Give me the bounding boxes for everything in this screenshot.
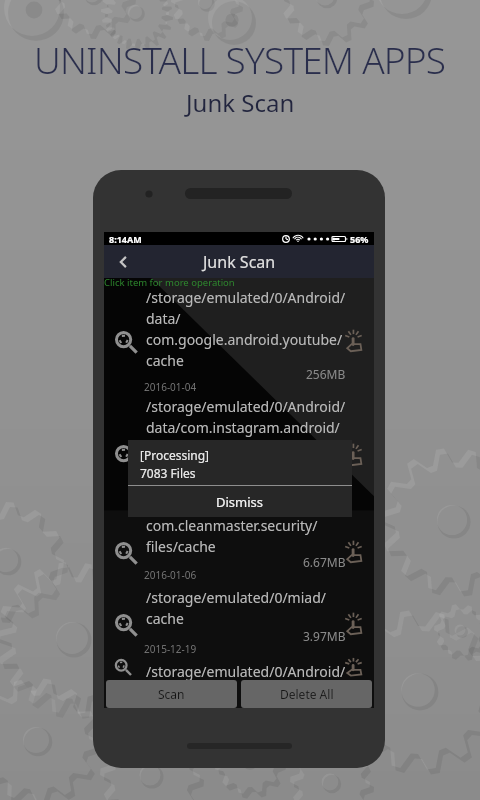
other: Tap action xyxy=(342,331,364,353)
staticText: 8:14AM xyxy=(109,233,142,245)
staticText: com.cleanmaster.security/ xyxy=(146,516,318,535)
staticText: 56% xyxy=(350,233,369,245)
other: Scan item xyxy=(114,658,138,676)
button[interactable]: Scan item xyxy=(104,289,374,395)
button[interactable]: Back xyxy=(104,245,144,278)
staticText: files/cache xyxy=(146,537,216,556)
staticText: Click item for more operation xyxy=(104,276,235,289)
other: Scan item xyxy=(114,541,138,565)
staticText: 3.97MB xyxy=(303,628,346,644)
button[interactable]: Delete All xyxy=(241,680,372,708)
other: Scan item xyxy=(114,613,138,637)
staticText: [Processing] xyxy=(140,447,210,463)
button[interactable]: Scan item xyxy=(104,589,374,661)
staticText: Junk Scan xyxy=(186,86,295,119)
button[interactable]: Dismiss xyxy=(128,486,352,517)
staticText: cache xyxy=(146,609,184,628)
other: Tap action xyxy=(342,445,364,467)
button[interactable]: Scan item xyxy=(104,661,374,679)
other: Tap action xyxy=(342,542,364,564)
staticText: 2016-01-06 xyxy=(144,568,197,582)
button[interactable]: Scan item xyxy=(104,517,374,589)
staticText: Junk Scan xyxy=(203,251,276,273)
staticText: cache xyxy=(146,439,184,458)
button[interactable]: Scan xyxy=(106,680,237,708)
button[interactable]: Scan item xyxy=(104,395,374,517)
staticText: data/com.instagram.android/ xyxy=(146,418,340,437)
staticText: /storage/emulated/0/miad/ xyxy=(146,588,326,607)
staticText: /storage/emulated/0/Android/ xyxy=(146,662,346,681)
staticText: 2015-12-19 xyxy=(144,642,197,656)
staticText: com.google.android.youtube/ xyxy=(146,330,343,349)
staticText: data/ xyxy=(146,309,181,328)
staticText: /storage/emulated/0/Android/ xyxy=(146,288,346,307)
staticText: cache xyxy=(146,351,184,370)
staticText: 7083 Files xyxy=(140,465,196,481)
button[interactable]: Back xyxy=(104,245,374,278)
other: Scan item xyxy=(114,444,138,468)
staticText: 256MB xyxy=(306,366,346,382)
staticText: Scan xyxy=(158,686,185,702)
staticText: /storage/emulated/0/Android/ xyxy=(146,397,346,416)
other: Scan item xyxy=(114,330,138,354)
staticText: 118MB xyxy=(306,474,346,490)
staticText: Delete All xyxy=(280,686,334,702)
other: Tap action xyxy=(342,614,364,636)
staticText: 6.67MB xyxy=(303,554,346,570)
staticText: UNINSTALL SYSTEM APPS xyxy=(34,34,446,84)
other: Tap action xyxy=(342,659,364,677)
staticText: 2016-01-04 xyxy=(144,380,197,394)
staticText: Dismiss xyxy=(216,493,264,511)
